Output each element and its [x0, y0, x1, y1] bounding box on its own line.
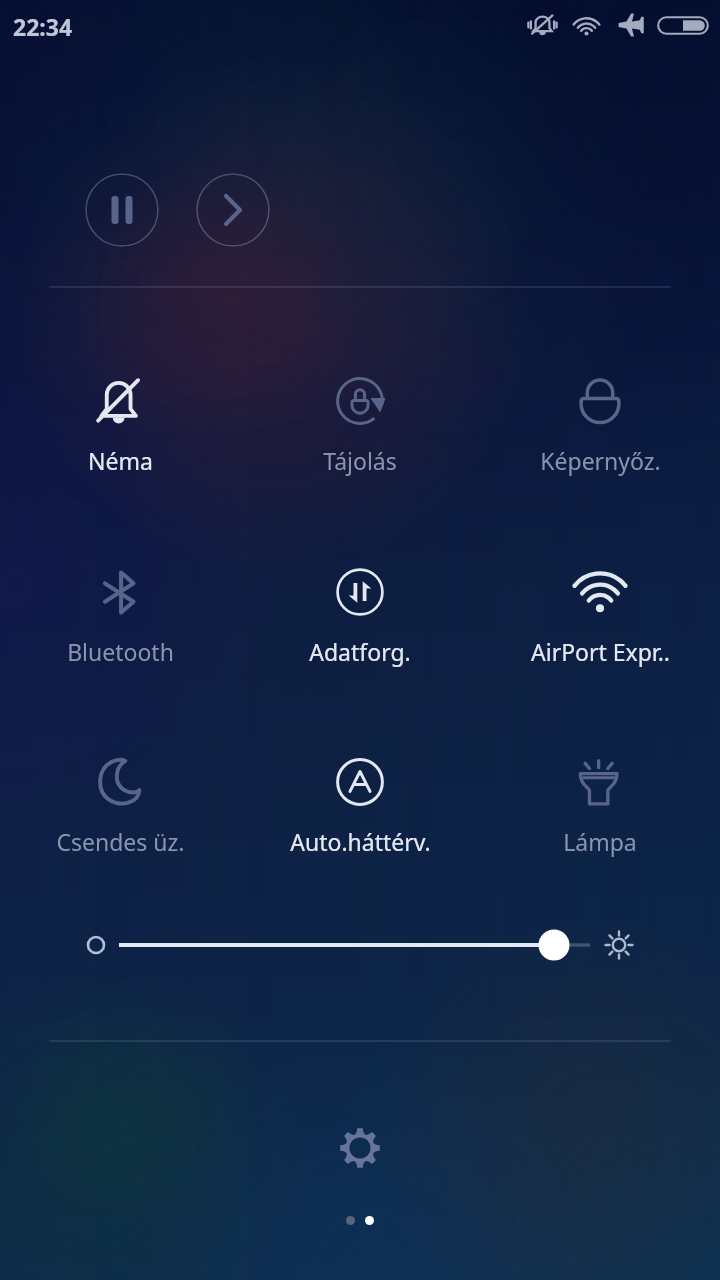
- staticText: Csendes üz.: [56, 826, 185, 857]
- staticText: Néma: [88, 445, 153, 476]
- button[interactable]: Képernyőz.: [480, 374, 720, 476]
- button[interactable]: Bluetooth: [0, 565, 240, 667]
- staticText: 22:34: [13, 11, 73, 42]
- staticText: Tájolás: [323, 445, 397, 476]
- button[interactable]: Tájolás: [240, 374, 480, 476]
- button[interactable]: Settings: [332, 1120, 388, 1176]
- button[interactable]: Lámpa: [480, 755, 720, 857]
- staticText: Lámpa: [563, 826, 637, 857]
- button[interactable]: Néma: [0, 374, 240, 476]
- staticText: Adatforg.: [309, 636, 411, 667]
- staticText: Bluetooth: [67, 636, 174, 667]
- staticText: AirPort Expr..: [531, 636, 670, 667]
- button[interactable]: Adatforg.: [240, 565, 480, 667]
- button[interactable]: AirPort Expr..: [480, 565, 720, 667]
- staticText: Képernyőz.: [540, 445, 661, 476]
- button[interactable]: Pause: [85, 173, 159, 247]
- button[interactable]: Csendes üz.: [0, 755, 240, 857]
- button[interactable]: Next: [196, 173, 270, 247]
- button[interactable]: Brightness: [0, 905, 720, 985]
- staticText: Auto.háttérv.: [290, 826, 431, 857]
- button[interactable]: Auto.háttérv.: [240, 755, 480, 857]
